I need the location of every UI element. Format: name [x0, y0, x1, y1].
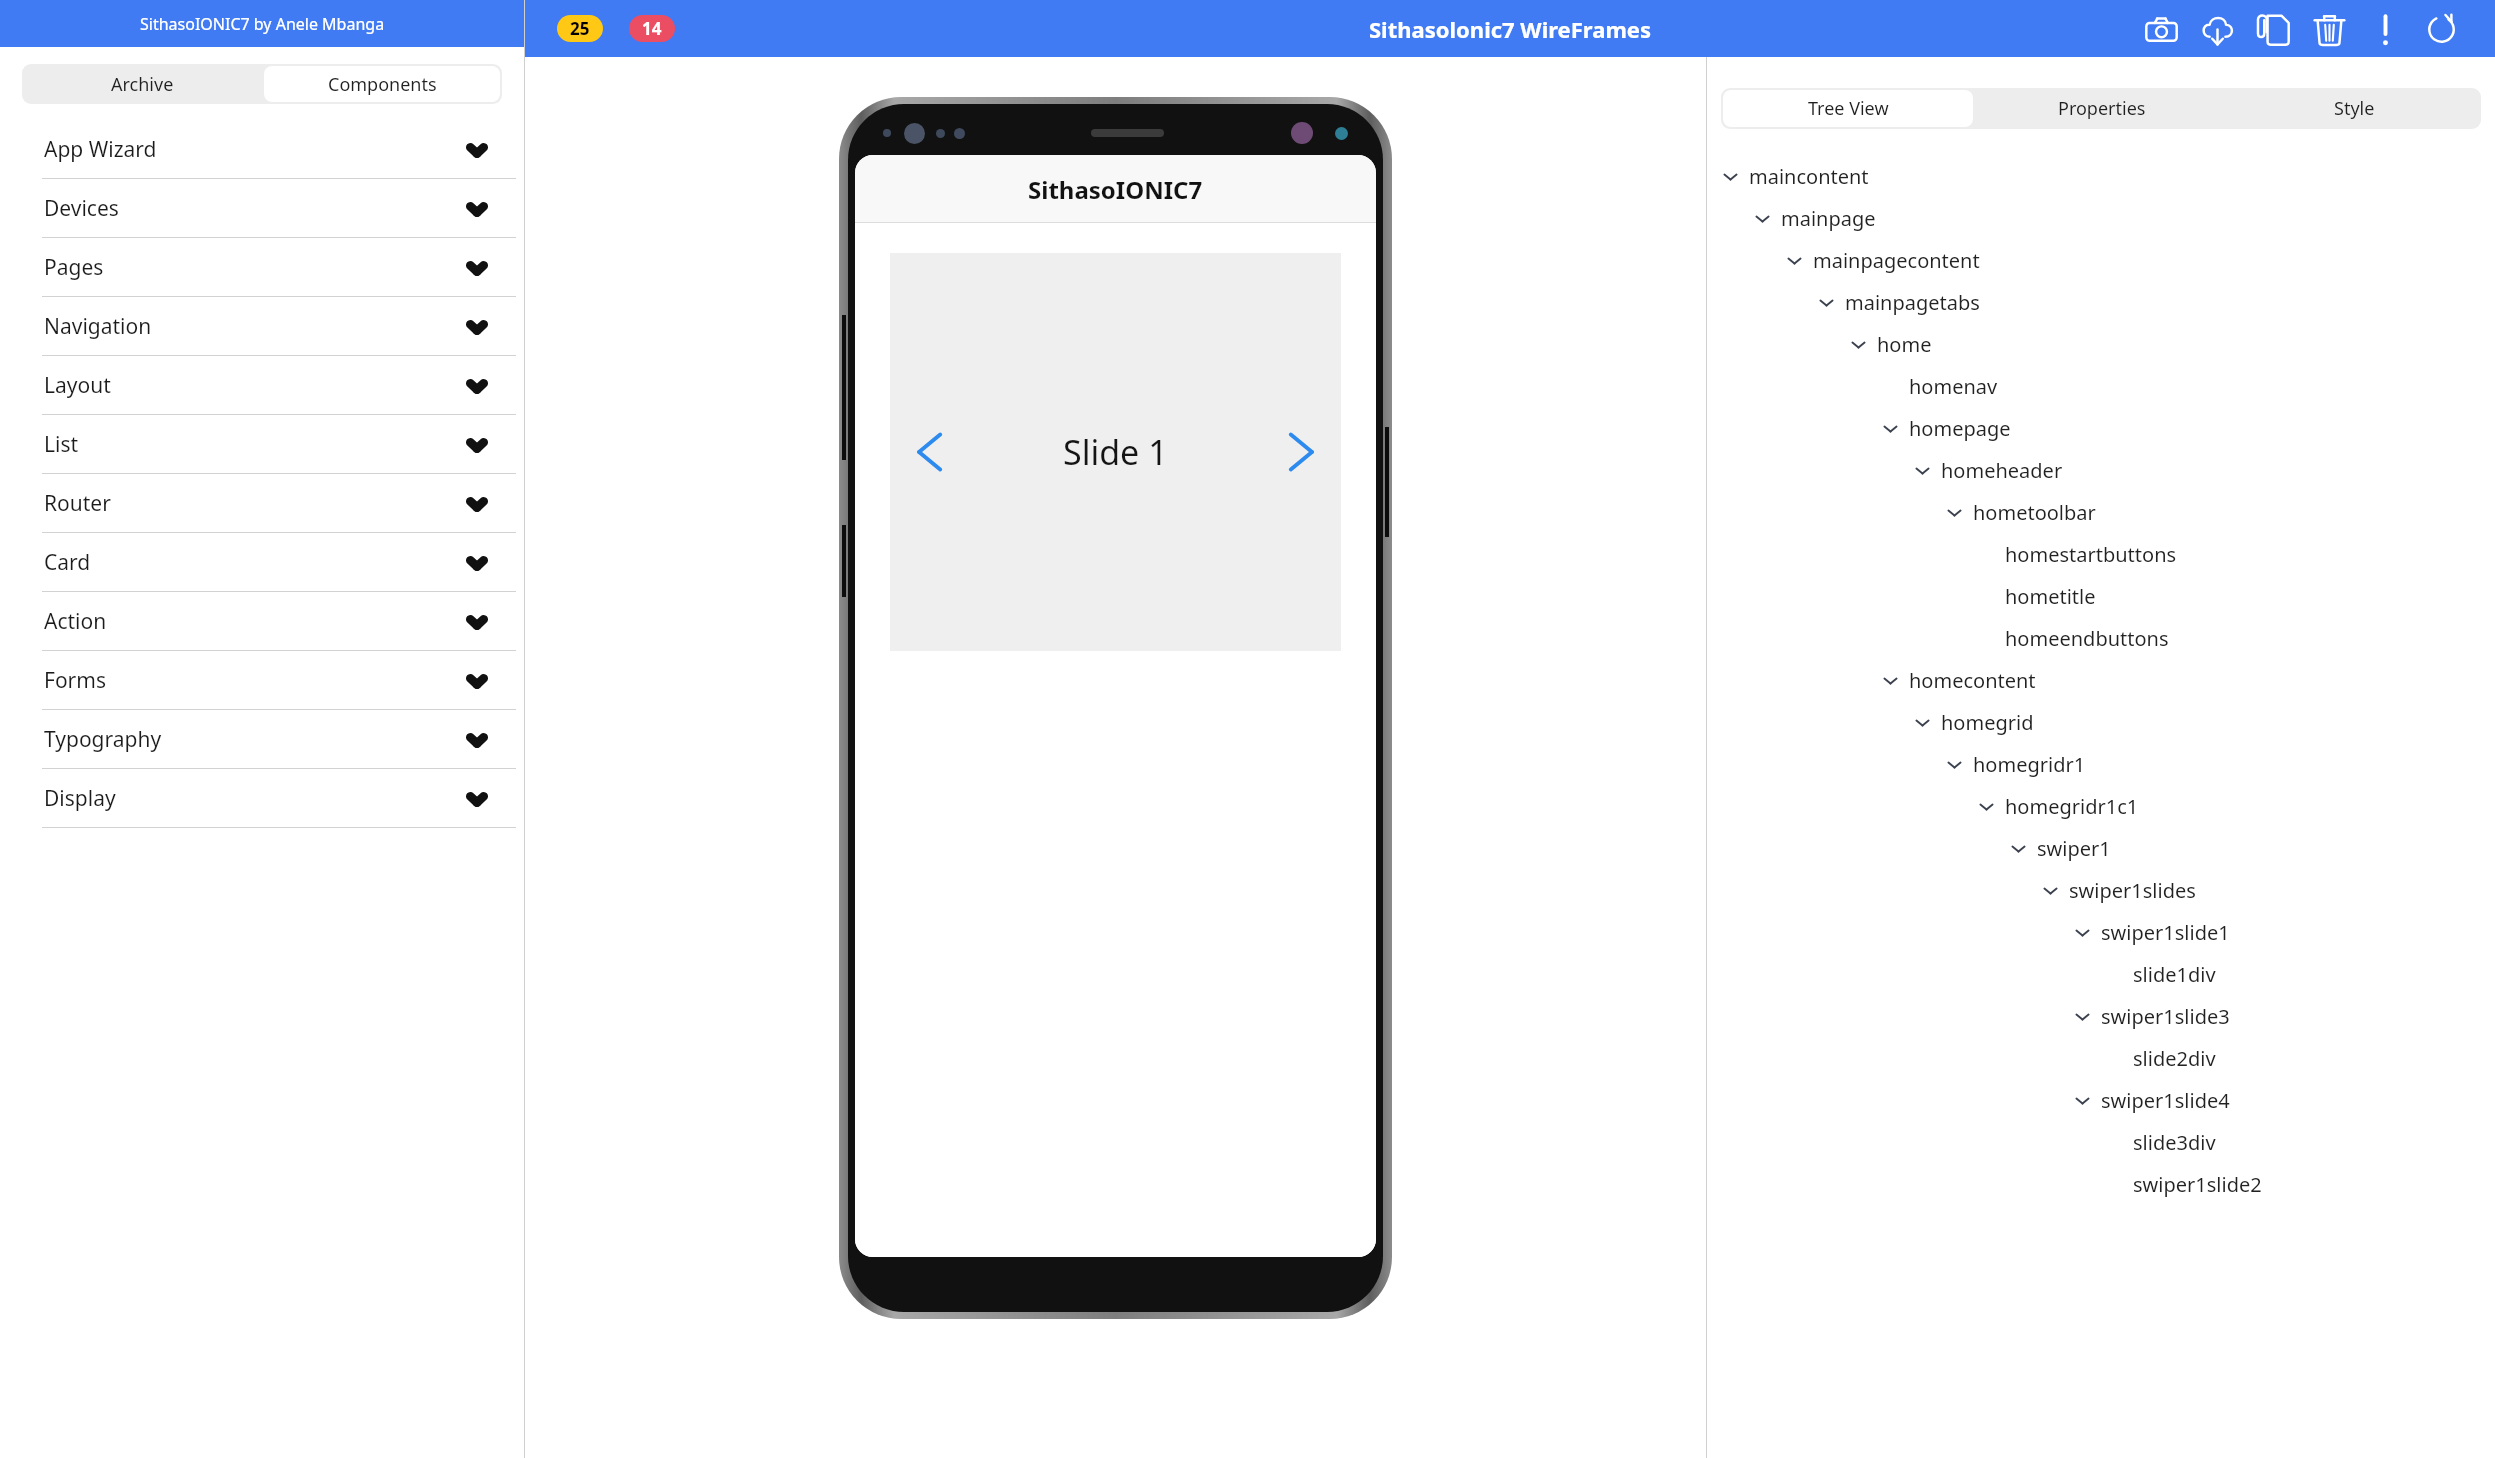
button[interactable]: homenav	[1881, 365, 2495, 407]
button[interactable]: swiper1slide4	[2073, 1079, 2495, 1121]
staticText: Pages	[44, 253, 104, 282]
button[interactable]: homecontent	[1881, 659, 2495, 701]
button[interactable]: Style	[2230, 90, 2479, 127]
button[interactable]: Tree View	[1723, 90, 1973, 127]
button[interactable]: Action	[0, 592, 524, 651]
button[interactable]: Pages	[0, 238, 524, 297]
staticText: home	[1877, 331, 1932, 358]
staticText: Display	[44, 784, 116, 813]
staticText: homeheader	[1941, 457, 2063, 484]
staticText: Action	[44, 607, 107, 636]
staticText: SithasoIONIC7	[1028, 173, 1203, 206]
button[interactable]: 14	[629, 15, 675, 42]
staticText: Card	[44, 548, 91, 577]
staticText: homegrid	[1941, 709, 2034, 736]
staticText: homenav	[1909, 373, 1998, 400]
staticText: swiper1slide2	[2133, 1171, 2262, 1198]
button[interactable]: homegrid	[1913, 701, 2495, 743]
button[interactable]: Properties	[1977, 90, 2226, 127]
button[interactable]: homegridr1	[1945, 743, 2495, 785]
staticText: slide3div	[2133, 1129, 2216, 1156]
staticText: swiper1slide4	[2101, 1087, 2230, 1114]
staticText: Forms	[44, 666, 106, 695]
staticText: Sithasolonic7 WireFrames	[1369, 14, 1652, 44]
button[interactable]: swiper1slide3	[2073, 995, 2495, 1037]
button[interactable]: homegridr1c1	[1977, 785, 2495, 827]
staticText: swiper1slide1	[2101, 919, 2230, 946]
staticText: swiper1slides	[2069, 877, 2196, 904]
staticText: List	[44, 430, 79, 459]
button[interactable]: Router	[0, 474, 524, 533]
button[interactable]: Previous slide	[904, 425, 958, 479]
staticText: 14	[642, 17, 662, 40]
staticText: homegridr1	[1973, 751, 2086, 778]
staticText: swiper1	[2037, 835, 2111, 862]
button[interactable]: App Wizard	[0, 120, 524, 179]
staticText: Layout	[44, 371, 111, 400]
staticText: mainpagecontent	[1813, 247, 1980, 274]
staticText: SithasoIONIC7 by Anele Mbanga	[140, 13, 385, 35]
button[interactable]: swiper1slide2	[2105, 1163, 2495, 1205]
button[interactable]: homeheader	[1913, 449, 2495, 491]
staticText: Properties	[2058, 96, 2146, 121]
button[interactable]: Typography	[0, 710, 524, 769]
staticText: Slide 1	[1063, 429, 1168, 475]
button[interactable]: Devices	[0, 179, 524, 238]
staticText: Devices	[44, 194, 119, 223]
staticText: homestartbuttons	[2005, 541, 2177, 568]
staticText: swiper1slide3	[2101, 1003, 2230, 1030]
staticText: Typography	[44, 725, 162, 754]
button[interactable]: slide2div	[2105, 1037, 2495, 1079]
button[interactable]: mainpagetabs	[1817, 281, 2495, 323]
button[interactable]: List	[0, 415, 524, 474]
button[interactable]: home	[1849, 323, 2495, 365]
button[interactable]: Navigation	[0, 297, 524, 356]
button[interactable]: Download	[2189, 1, 2245, 57]
staticText: slide1div	[2133, 961, 2216, 988]
button[interactable]: Archive	[24, 66, 260, 102]
staticText: mainpage	[1781, 205, 1876, 232]
staticText: Components	[328, 72, 437, 97]
staticText: Archive	[111, 72, 174, 97]
button[interactable]: swiper1	[2009, 827, 2495, 869]
staticText: hometitle	[2005, 583, 2096, 610]
staticText: maincontent	[1749, 163, 1869, 190]
button[interactable]: slide1div	[2105, 953, 2495, 995]
staticText: Tree View	[1808, 96, 1889, 121]
button[interactable]: maincontent	[1721, 155, 2495, 197]
button[interactable]: Delete	[2301, 1, 2357, 57]
button[interactable]: mainpagecontent	[1785, 239, 2495, 281]
button[interactable]: Components	[264, 66, 500, 102]
staticText: mainpagetabs	[1845, 289, 1980, 316]
button[interactable]: hometitle	[1977, 575, 2495, 617]
staticText: slide2div	[2133, 1045, 2216, 1072]
button[interactable]: mainpage	[1753, 197, 2495, 239]
button[interactable]: homestartbuttons	[1977, 533, 2495, 575]
button[interactable]: slide3div	[2105, 1121, 2495, 1163]
staticText: homegridr1c1	[2005, 793, 2139, 820]
button[interactable]: Next slide	[1273, 425, 1327, 479]
button[interactable]: Layout	[0, 356, 524, 415]
staticText: 25	[570, 17, 590, 40]
staticText: homeendbuttons	[2005, 625, 2169, 652]
button[interactable]: Display	[0, 769, 524, 828]
staticText: Router	[44, 489, 111, 518]
staticText: App Wizard	[44, 135, 157, 164]
button[interactable]: Refresh	[2413, 1, 2469, 57]
staticText: homecontent	[1909, 667, 2036, 694]
button[interactable]: homepage	[1881, 407, 2495, 449]
button[interactable]: Slide 1	[890, 253, 1341, 651]
button[interactable]: Camera	[2133, 1, 2189, 57]
staticText: Style	[2334, 96, 2375, 121]
button[interactable]: homeendbuttons	[1977, 617, 2495, 659]
button[interactable]: Forms	[0, 651, 524, 710]
staticText: hometoolbar	[1973, 499, 2096, 526]
button[interactable]: 25	[557, 15, 603, 42]
staticText: Navigation	[44, 312, 152, 341]
button[interactable]: swiper1slide1	[2073, 911, 2495, 953]
button[interactable]: hometoolbar	[1945, 491, 2495, 533]
button[interactable]: swiper1slides	[2041, 869, 2495, 911]
button[interactable]: Card	[0, 533, 524, 592]
button[interactable]: Attach	[2245, 1, 2301, 57]
button[interactable]: Alerts	[2357, 1, 2413, 57]
